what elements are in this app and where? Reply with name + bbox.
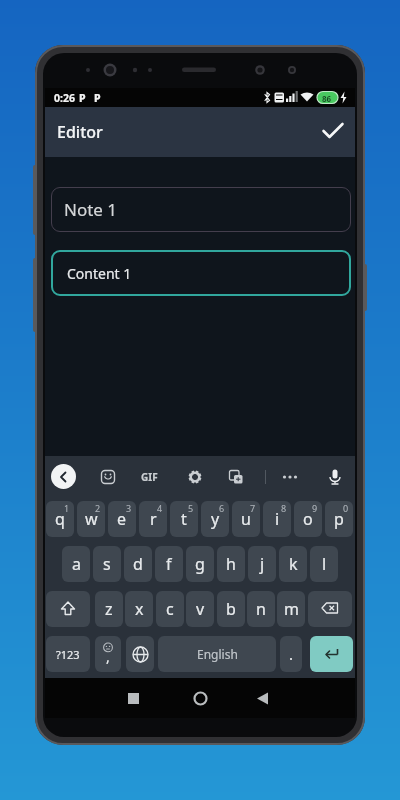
staticText: P — [79, 91, 86, 105]
staticText: t — [181, 508, 187, 530]
staticText: GIF — [141, 470, 158, 484]
staticText: 1 — [64, 502, 70, 514]
button[interactable]: ?123 — [46, 636, 90, 672]
staticText: g — [195, 553, 205, 575]
button[interactable] — [308, 591, 352, 627]
button[interactable] — [277, 464, 303, 490]
staticText: Editor — [57, 121, 103, 143]
staticText: 4 — [157, 502, 163, 514]
button[interactable]: s — [93, 546, 121, 582]
button[interactable] — [182, 464, 208, 490]
button[interactable]: b — [217, 591, 245, 627]
button[interactable]: p — [325, 501, 353, 537]
staticText: y — [211, 508, 220, 530]
staticText: 7 — [250, 502, 256, 514]
button[interactable]: n — [247, 591, 275, 627]
button[interactable]: t — [170, 501, 198, 537]
button[interactable]: w — [77, 501, 105, 537]
staticText: P — [94, 91, 101, 105]
button[interactable]: a — [62, 546, 90, 582]
button[interactable]: u — [232, 501, 260, 537]
staticText: z — [105, 598, 113, 620]
button[interactable]: k — [279, 546, 307, 582]
button[interactable]: y — [201, 501, 229, 537]
button[interactable]: Note 1 — [51, 187, 351, 232]
button[interactable] — [126, 636, 154, 672]
staticText: j — [260, 553, 265, 575]
button[interactable]: x — [125, 591, 153, 627]
button[interactable]: j — [248, 546, 276, 582]
staticText: 9 — [312, 502, 318, 514]
button[interactable]: v — [186, 591, 214, 627]
button[interactable]: m — [277, 591, 305, 627]
button[interactable] — [192, 690, 208, 706]
staticText: u — [241, 508, 251, 530]
staticText: h — [226, 553, 236, 575]
staticText: r — [150, 508, 157, 530]
staticText: f — [166, 553, 172, 575]
button[interactable]: f — [155, 546, 183, 582]
button[interactable] — [310, 636, 353, 672]
button[interactable]: g — [186, 546, 214, 582]
button[interactable] — [46, 591, 90, 627]
button[interactable] — [322, 464, 348, 490]
button[interactable] — [223, 464, 249, 490]
staticText: 8 — [281, 502, 287, 514]
button[interactable] — [95, 464, 121, 490]
staticText: i — [275, 508, 280, 530]
button[interactable]: c — [156, 591, 184, 627]
staticText: Content 1 — [67, 264, 132, 283]
staticText: 5 — [188, 502, 194, 514]
staticText: x — [135, 598, 144, 620]
button[interactable]: GIF — [135, 464, 163, 490]
button[interactable]: q — [46, 501, 74, 537]
staticText: q — [55, 508, 65, 530]
staticText: 3 — [126, 502, 132, 514]
button[interactable]: i — [263, 501, 291, 537]
button[interactable] — [254, 690, 270, 706]
staticText: v — [196, 598, 205, 620]
button[interactable]: o — [294, 501, 322, 537]
button[interactable]: z — [95, 591, 123, 627]
staticText: l — [322, 553, 327, 575]
staticText: w — [85, 508, 98, 530]
button[interactable]: r — [139, 501, 167, 537]
staticText: e — [117, 508, 127, 530]
button[interactable]: h — [217, 546, 245, 582]
staticText: 0 — [343, 502, 349, 514]
button[interactable] — [320, 119, 346, 145]
staticText: c — [166, 598, 174, 620]
button[interactable]: Content 1 — [51, 250, 351, 296]
button[interactable]: English — [158, 636, 276, 672]
button[interactable]: l — [310, 546, 338, 582]
button[interactable]: , — [95, 636, 121, 672]
staticText: . — [289, 644, 294, 664]
staticText: 6 — [219, 502, 225, 514]
button[interactable]: e — [108, 501, 136, 537]
staticText: 0:26 — [54, 91, 75, 105]
button[interactable] — [125, 690, 141, 706]
staticText: a — [72, 553, 81, 575]
staticText: s — [103, 553, 111, 575]
staticText: p — [334, 508, 344, 530]
staticText: 86 — [322, 93, 332, 104]
staticText: ?123 — [56, 647, 80, 662]
staticText: k — [289, 553, 298, 575]
staticText: , — [106, 647, 110, 666]
button[interactable]: d — [124, 546, 152, 582]
button[interactable]: . — [280, 636, 302, 672]
staticText: 2 — [95, 502, 101, 514]
staticText: b — [226, 598, 236, 620]
staticText: Note 1 — [64, 198, 118, 221]
button[interactable] — [51, 464, 76, 489]
staticText: English — [197, 646, 238, 662]
staticText: d — [133, 553, 143, 575]
staticText: o — [303, 508, 313, 530]
staticText: n — [256, 598, 266, 620]
staticText: m — [284, 598, 299, 620]
